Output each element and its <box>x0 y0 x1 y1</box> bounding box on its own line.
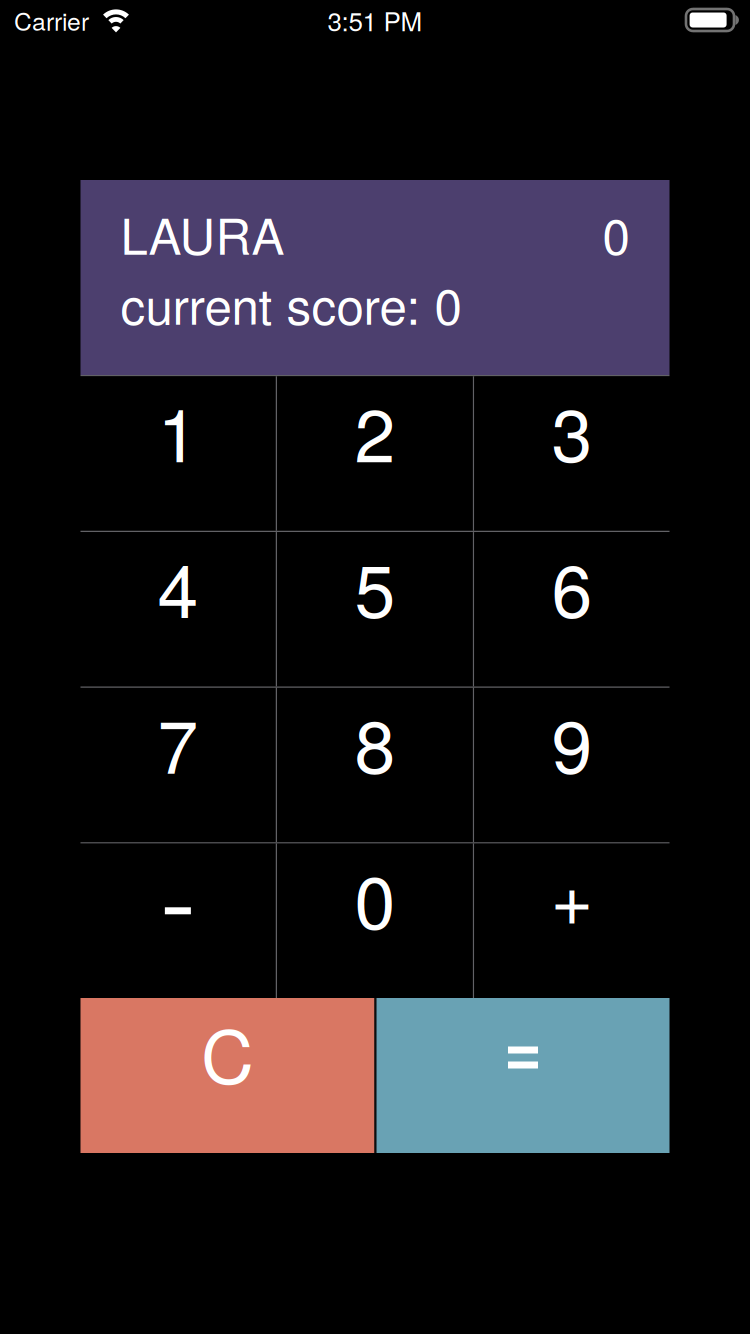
button[interactable]: 8 <box>277 688 473 842</box>
button[interactable]: 3 <box>474 376 670 531</box>
staticText: 5 <box>354 534 395 639</box>
button[interactable]: 2 <box>277 376 473 531</box>
button[interactable]: + <box>474 844 670 998</box>
button[interactable]: 4 <box>80 532 276 686</box>
button[interactable]: 7 <box>80 688 276 842</box>
button[interactable]: Equals <box>376 998 669 1153</box>
button[interactable]: 0 <box>277 844 473 998</box>
button[interactable]: Minus <box>80 844 276 998</box>
staticText: 8 <box>354 689 395 794</box>
staticText: 0 <box>354 845 395 950</box>
staticText: Carrier <box>14 2 89 38</box>
button[interactable]: 9 <box>474 688 670 842</box>
staticText: C <box>201 1000 254 1105</box>
staticText: 7 <box>157 689 198 794</box>
staticText: 9 <box>552 689 593 794</box>
staticText: current score: 0 <box>120 268 461 339</box>
staticText: 1 <box>157 378 198 483</box>
button[interactable]: C <box>80 998 374 1153</box>
staticText: 0 <box>602 198 629 269</box>
staticText: 6 <box>552 534 593 639</box>
staticText: + <box>551 841 594 946</box>
button[interactable]: 6 <box>474 532 670 686</box>
staticText: LAURA <box>120 198 284 269</box>
staticText: 3:51 PM <box>327 1 422 39</box>
staticText: 4 <box>157 534 198 639</box>
button[interactable]: 5 <box>277 532 473 686</box>
button[interactable]: 1 <box>80 376 276 531</box>
staticText: 3 <box>552 378 593 483</box>
staticText: 2 <box>354 378 395 483</box>
